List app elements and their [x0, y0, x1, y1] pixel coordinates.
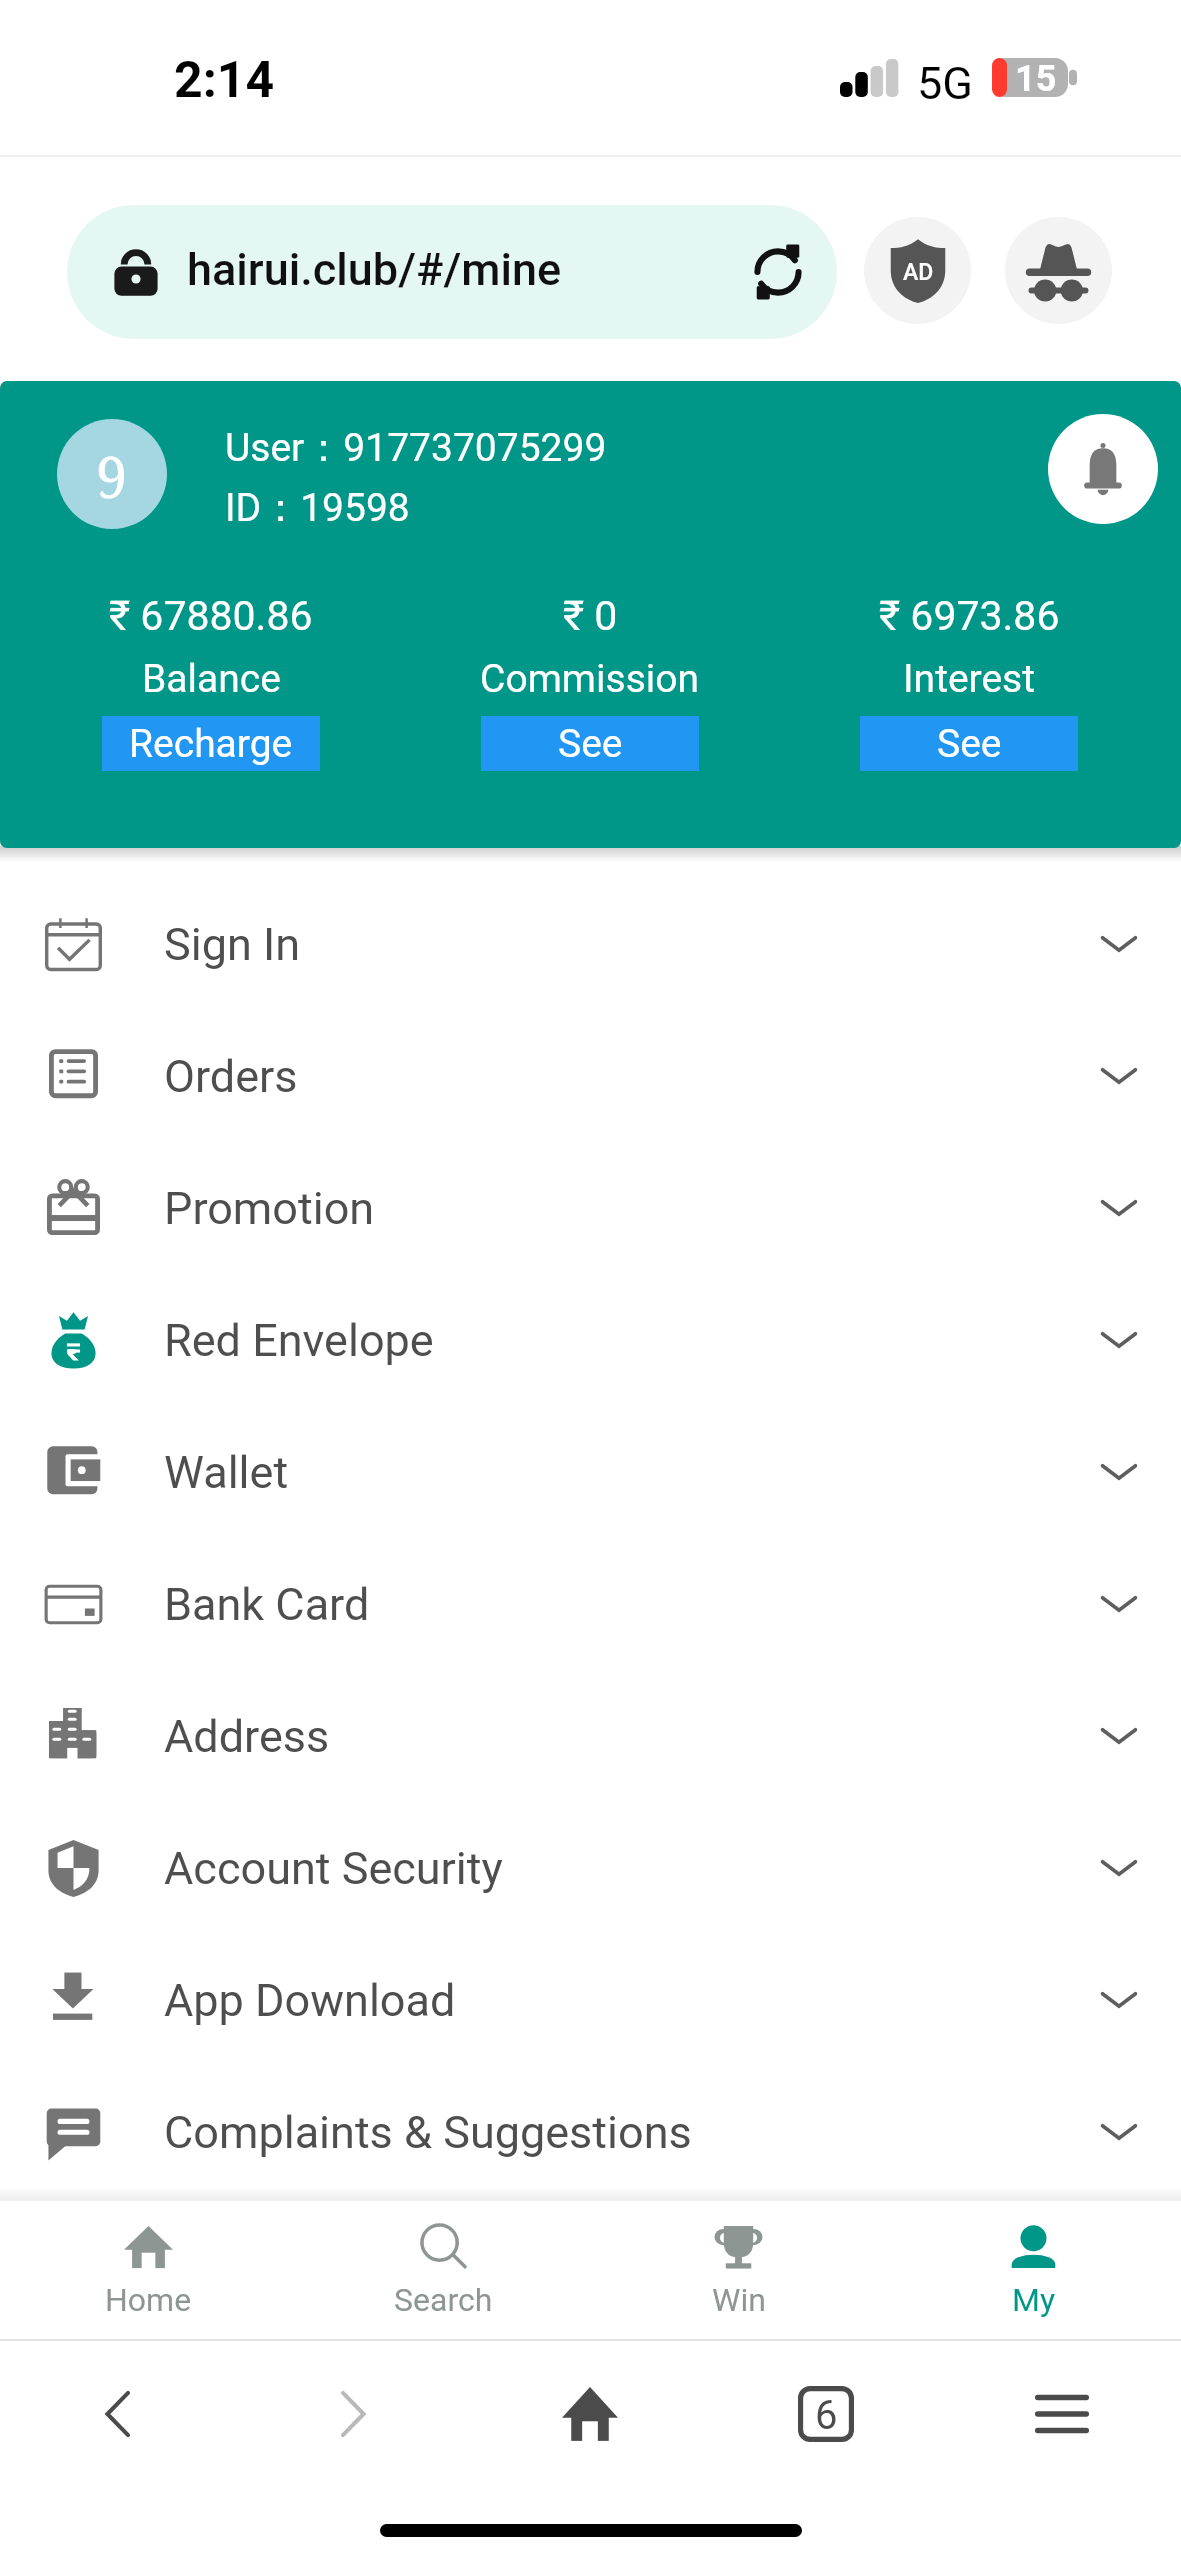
- staticText: ₹ 6973.86: [879, 592, 1060, 640]
- staticText: hairui.club/#/mine: [187, 243, 562, 296]
- button[interactable]: Account Security: [0, 1802, 1181, 1934]
- button[interactable]: Bank Card: [0, 1538, 1181, 1670]
- staticText: AD: [903, 259, 934, 286]
- staticText: ₹ 0: [563, 592, 618, 640]
- staticText: Complaints & Suggestions: [164, 2106, 692, 2159]
- staticText: 6: [815, 2392, 838, 2439]
- staticText: Commission: [480, 656, 700, 702]
- staticText: See: [558, 721, 623, 767]
- staticText: Interest: [903, 656, 1036, 702]
- button[interactable]: Complaints & Suggestions: [0, 2066, 1181, 2198]
- button[interactable]: Win: [591, 2201, 886, 2341]
- button[interactable]: Menu: [1007, 2359, 1117, 2469]
- staticText: 5G: [917, 57, 973, 110]
- button[interactable]: See: [860, 716, 1078, 771]
- staticText: User：917737075299: [225, 423, 607, 472]
- button[interactable]: Ad blocker: [864, 217, 971, 324]
- button[interactable]: See: [481, 716, 699, 771]
- button[interactable]: Home: [535, 2359, 645, 2469]
- staticText: Home: [105, 2281, 192, 2319]
- button[interactable]: Recharge: [102, 716, 320, 771]
- button[interactable]: Search: [296, 2201, 591, 2341]
- button[interactable]: Incognito mode: [1005, 217, 1112, 324]
- button[interactable]: hairui.club/#/mine: [67, 205, 837, 339]
- button[interactable]: Sign In: [0, 878, 1181, 1010]
- button[interactable]: Tabs: [771, 2359, 881, 2469]
- button[interactable]: Reload: [749, 243, 807, 301]
- staticText: Bank Card: [164, 1578, 370, 1631]
- staticText: Win: [712, 2281, 766, 2319]
- staticText: Account Security: [164, 1842, 503, 1895]
- staticText: Address: [164, 1710, 330, 1763]
- button[interactable]: Home: [0, 2201, 296, 2341]
- staticText: Search: [394, 2281, 493, 2319]
- button[interactable]: 9: [57, 419, 167, 529]
- staticText: Sign In: [164, 918, 301, 971]
- button[interactable]: Wallet: [0, 1406, 1181, 1538]
- button[interactable]: Address: [0, 1670, 1181, 1802]
- staticText: Wallet: [164, 1446, 289, 1499]
- staticText: 15: [1015, 58, 1057, 97]
- staticText: ₹ 67880.86: [109, 592, 313, 640]
- button[interactable]: Orders: [0, 1010, 1181, 1142]
- staticText: Recharge: [129, 721, 293, 767]
- button[interactable]: Promotion: [0, 1142, 1181, 1274]
- button[interactable]: My: [886, 2201, 1181, 2341]
- staticText: 2:14: [174, 51, 275, 110]
- button[interactable]: Forward: [299, 2359, 409, 2469]
- button[interactable]: App Download: [0, 1934, 1181, 2066]
- staticText: Balance: [142, 656, 281, 702]
- button[interactable]: Back: [62, 2359, 172, 2469]
- staticText: Orders: [164, 1050, 298, 1103]
- staticText: App Download: [164, 1974, 456, 2027]
- staticText: ID：19598: [225, 483, 410, 532]
- staticText: My: [1012, 2281, 1056, 2319]
- button[interactable]: Notifications: [1048, 414, 1158, 524]
- staticText: Promotion: [164, 1182, 375, 1235]
- button[interactable]: Red Envelope: [0, 1274, 1181, 1406]
- staticText: Red Envelope: [164, 1314, 434, 1367]
- staticText: 9: [96, 438, 128, 514]
- staticText: See: [937, 721, 1002, 767]
